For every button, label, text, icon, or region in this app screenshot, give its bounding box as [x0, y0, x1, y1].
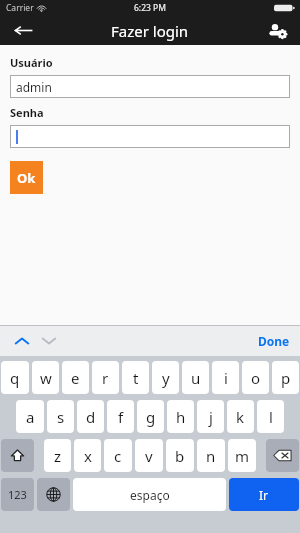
- staticText: Carrier: [6, 2, 34, 14]
- button[interactable]: p: [272, 361, 299, 394]
- staticText: q: [10, 368, 20, 388]
- staticText: l: [269, 407, 273, 427]
- button[interactable]: c: [104, 439, 132, 472]
- button[interactable]: Done: [254, 329, 294, 353]
- button[interactable]: Back: [0, 16, 46, 45]
- staticText: n: [206, 446, 216, 466]
- button[interactable]: t: [122, 361, 149, 394]
- staticText: f: [118, 407, 124, 427]
- staticText: w: [40, 368, 52, 388]
- button[interactable]: f: [107, 400, 134, 433]
- staticText: e: [71, 368, 80, 388]
- staticText: espaço: [130, 487, 170, 503]
- staticText: g: [146, 407, 156, 427]
- button[interactable]: b: [166, 439, 194, 472]
- staticText: o: [251, 368, 261, 388]
- button[interactable]: a: [16, 400, 44, 433]
- button[interactable]: n: [197, 439, 225, 472]
- staticText: j: [209, 407, 213, 427]
- button[interactable]: u: [182, 361, 209, 394]
- staticText: a: [26, 407, 35, 427]
- button[interactable]: m: [228, 439, 256, 472]
- button[interactable]: Next field: [35, 327, 62, 354]
- button[interactable]: d: [77, 400, 104, 433]
- button[interactable]: [10, 125, 290, 148]
- staticText: t: [133, 368, 139, 388]
- button[interactable]: Shift: [1, 439, 34, 472]
- staticText: c: [114, 446, 122, 466]
- button[interactable]: e: [62, 361, 89, 394]
- staticText: p: [281, 368, 291, 388]
- staticText: Ok: [17, 169, 36, 187]
- button[interactable]: r: [92, 361, 119, 394]
- button[interactable]: v: [135, 439, 163, 472]
- staticText: r: [102, 368, 109, 388]
- button[interactable]: Ok: [10, 161, 43, 194]
- staticText: m: [235, 446, 250, 466]
- staticText: s: [57, 407, 65, 427]
- button[interactable]: g: [137, 400, 164, 433]
- staticText: d: [86, 407, 96, 427]
- button[interactable]: espaço: [73, 478, 226, 511]
- staticText: u: [191, 368, 201, 388]
- button[interactable]: i: [212, 361, 239, 394]
- button[interactable]: s: [47, 400, 74, 433]
- button[interactable]: Change keyboard: [37, 478, 70, 511]
- staticText: 6:23 PM: [134, 2, 166, 14]
- button[interactable]: l: [257, 400, 284, 433]
- button[interactable]: o: [242, 361, 269, 394]
- button[interactable]: w: [32, 361, 59, 394]
- staticText: Senha: [10, 105, 44, 120]
- button[interactable]: x: [74, 439, 101, 472]
- staticText: x: [84, 446, 92, 466]
- button[interactable]: h: [167, 400, 194, 433]
- staticText: v: [145, 446, 153, 466]
- button[interactable]: y: [152, 361, 179, 394]
- button[interactable]: k: [227, 400, 254, 433]
- button[interactable]: 123: [1, 478, 34, 511]
- staticText: Done: [258, 333, 290, 349]
- staticText: y: [162, 368, 170, 388]
- button[interactable]: Ir: [229, 478, 299, 511]
- staticText: Usuário: [10, 55, 53, 70]
- button[interactable]: j: [197, 400, 224, 433]
- staticText: z: [54, 446, 62, 466]
- staticText: 123: [8, 487, 27, 502]
- button[interactable]: q: [1, 361, 29, 394]
- button[interactable]: Backspace: [266, 439, 299, 472]
- button[interactable]: z: [44, 439, 71, 472]
- button[interactable]: Account settings: [254, 16, 300, 45]
- staticText: k: [236, 407, 245, 427]
- button[interactable]: Previous field: [8, 327, 35, 354]
- staticText: b: [175, 446, 185, 466]
- staticText: h: [176, 407, 186, 427]
- staticText: admin: [16, 79, 52, 95]
- staticText: i: [224, 368, 228, 388]
- staticText: Fazer login: [111, 21, 189, 41]
- button[interactable]: admin: [10, 75, 290, 98]
- staticText: Ir: [259, 487, 269, 503]
